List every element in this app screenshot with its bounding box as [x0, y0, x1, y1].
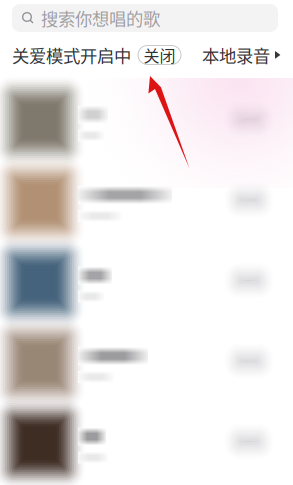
button[interactable]: 关闭 — [138, 45, 181, 64]
staticText: 关闭 — [143, 43, 175, 67]
staticText: 本地录音 — [202, 42, 270, 68]
staticText: 关爱模式开启中 — [12, 42, 131, 68]
staticText: 搜索你想唱的歌 — [41, 5, 160, 31]
button[interactable]: 本地录音 — [202, 42, 281, 68]
